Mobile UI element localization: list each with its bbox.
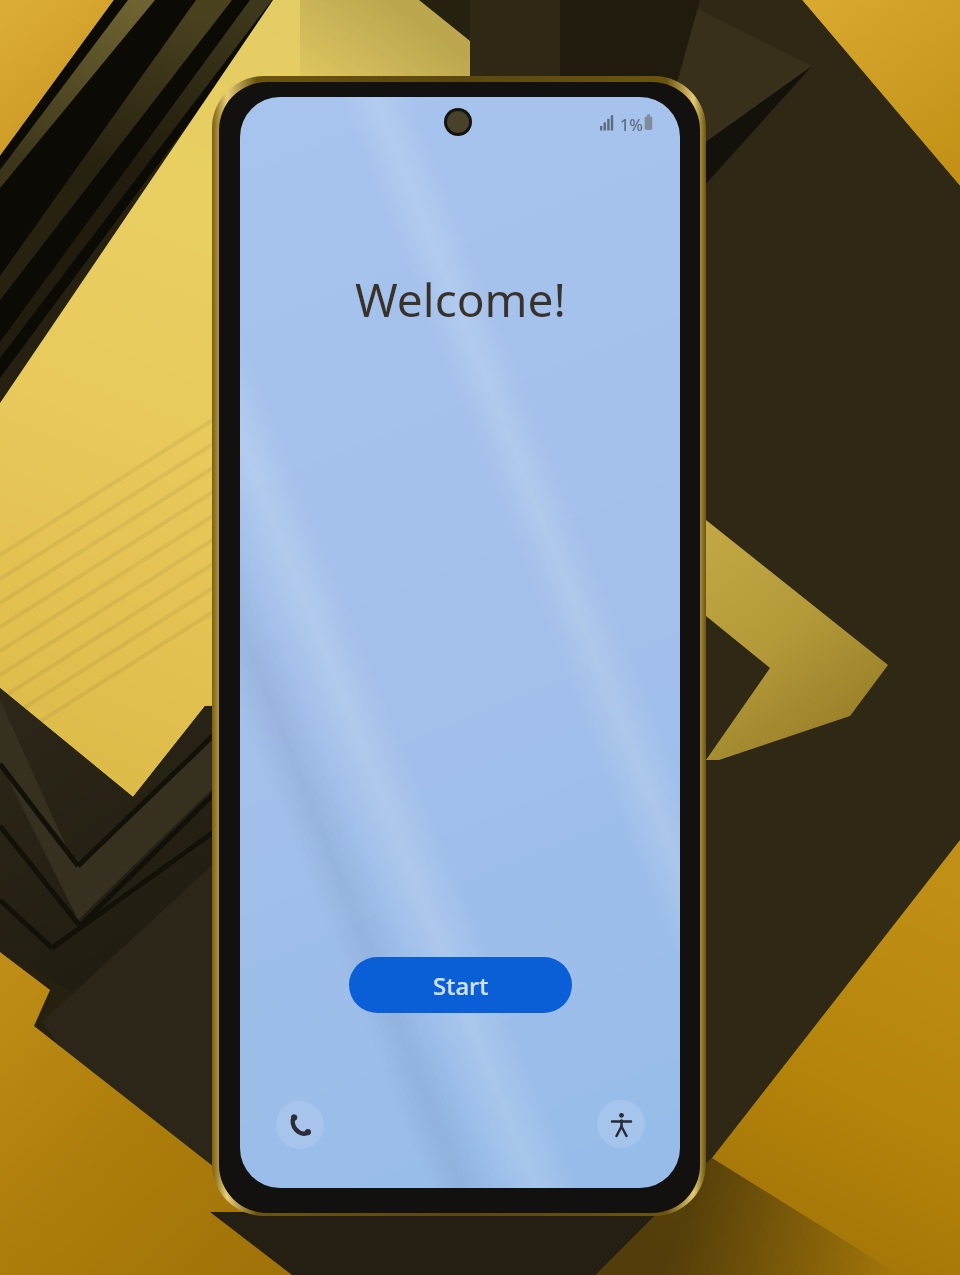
staticText: Start xyxy=(433,969,489,1002)
button[interactable]: Emergency call xyxy=(276,1101,324,1149)
button[interactable]: Start xyxy=(349,957,572,1013)
staticText: 1% xyxy=(620,114,643,136)
button[interactable]: Accessibility xyxy=(597,1100,645,1148)
staticText: Welcome! xyxy=(355,268,566,331)
